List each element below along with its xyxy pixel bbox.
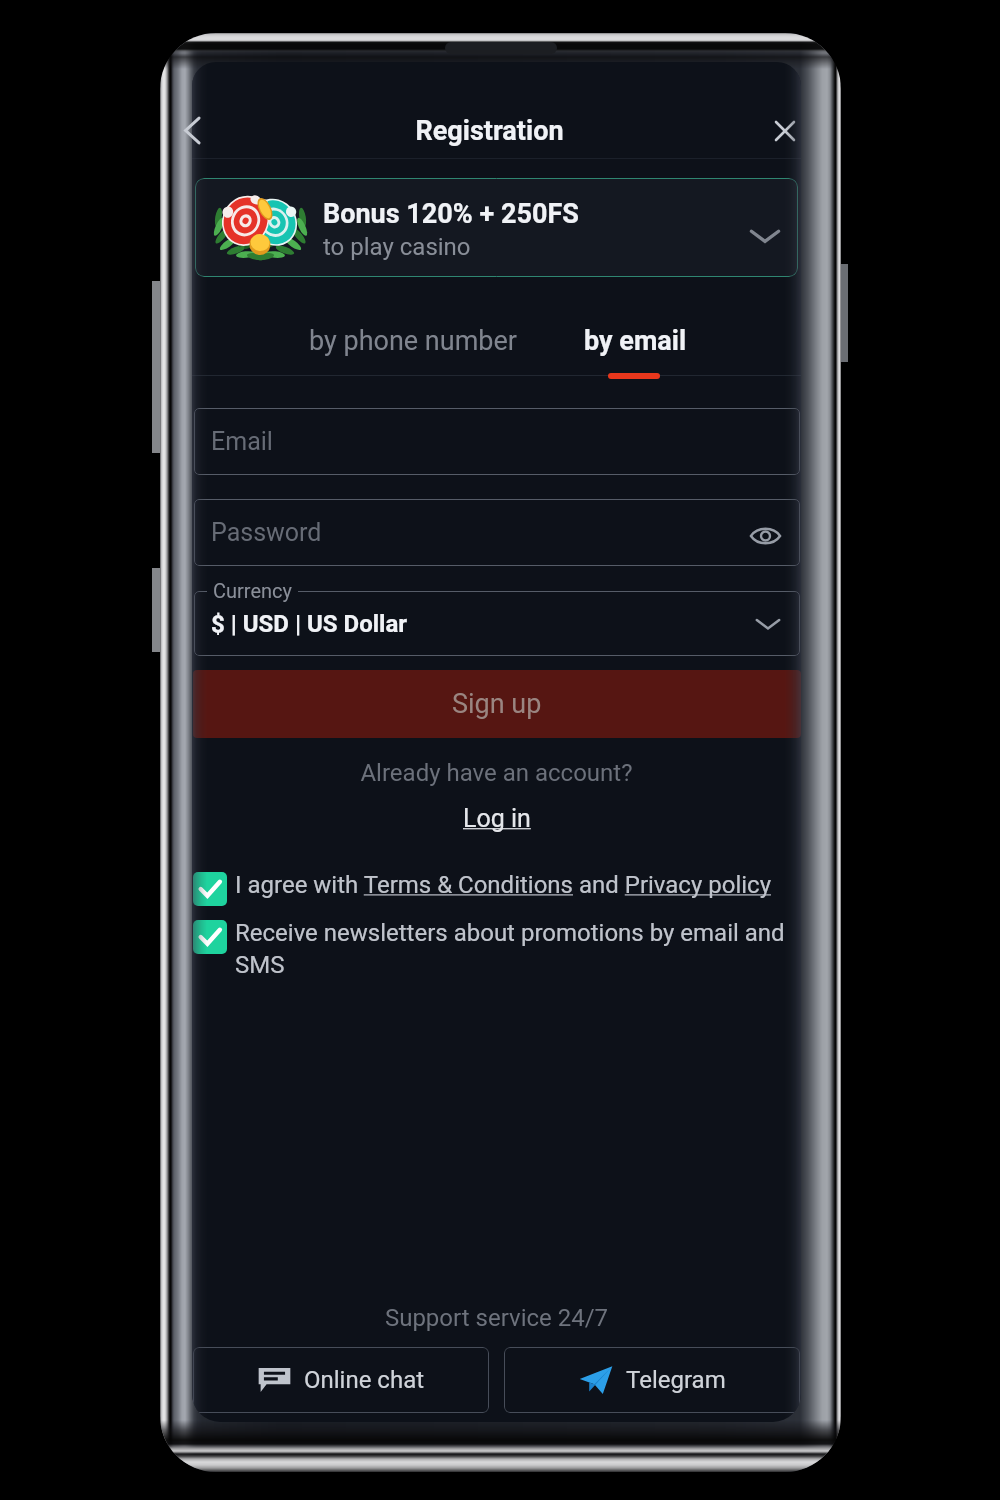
button[interactable]: I agree with Terms & Conditions and Priv… — [193, 872, 801, 906]
button[interactable]: Bonus 120% + 250FS — [195, 178, 798, 277]
staticText: Already have an account? — [192, 759, 801, 787]
button[interactable]: Receive newsletters about promotions by … — [193, 920, 801, 979]
button[interactable]: Online chat — [193, 1347, 489, 1413]
button[interactable]: Expand bonus — [742, 213, 788, 259]
staticText: Receive newsletters about promotions by … — [235, 919, 801, 978]
button[interactable]: Close — [763, 109, 801, 153]
button[interactable]: Sign up — [193, 670, 801, 738]
button[interactable]: $ | USD | US Dollar — [194, 591, 800, 656]
staticText: Registration — [192, 115, 794, 147]
staticText: Support service 24/7 — [192, 1304, 801, 1332]
button[interactable]: Password — [194, 499, 800, 566]
staticText: Sign up — [452, 688, 542, 720]
button[interactable]: Show password — [744, 515, 786, 557]
staticText: $ | USD | US Dollar — [211, 610, 408, 638]
staticText: Telegram — [626, 1366, 726, 1394]
button[interactable]: Log in — [457, 802, 537, 835]
staticText: I agree with Terms & Conditions and Priv… — [235, 871, 771, 899]
staticText: Online chat — [304, 1366, 425, 1394]
button[interactable]: Email — [194, 408, 800, 475]
button[interactable]: by phone number — [281, 296, 545, 385]
button[interactable]: by email — [545, 296, 725, 385]
staticText: to play casino — [323, 233, 471, 261]
button[interactable]: Back — [173, 108, 211, 152]
staticText: Email — [211, 427, 273, 456]
staticText: by email — [584, 325, 687, 357]
staticText: by phone number — [309, 325, 517, 357]
staticText: Currency — [213, 579, 292, 602]
staticText: Password — [211, 518, 322, 547]
staticText: Bonus 120% + 250FS — [323, 198, 579, 230]
button[interactable]: Telegram — [504, 1347, 800, 1413]
